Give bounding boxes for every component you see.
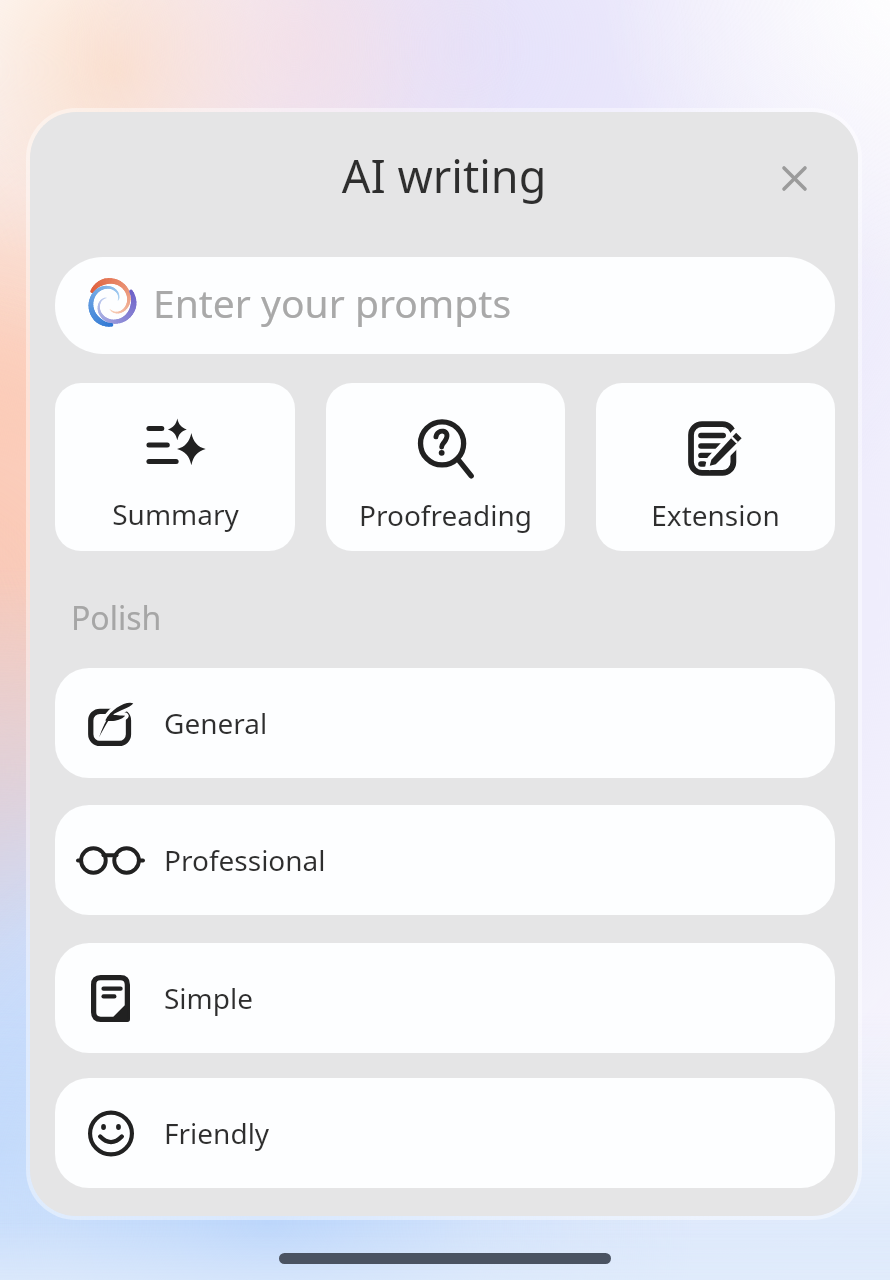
button[interactable]: Proofreading: [326, 383, 565, 551]
staticText: Extension: [651, 496, 780, 534]
button[interactable]: Friendly: [55, 1078, 835, 1188]
staticText: General: [164, 704, 268, 742]
button[interactable]: Summary: [55, 383, 295, 551]
staticText: Simple: [164, 979, 254, 1017]
button[interactable]: Extension: [596, 383, 835, 551]
staticText: Professional: [164, 841, 326, 879]
staticText: Polish: [71, 596, 162, 640]
staticText: Enter your prompts: [153, 276, 512, 329]
button[interactable]: Enter your prompts: [55, 257, 835, 354]
button[interactable]: Professional: [55, 805, 835, 915]
staticText: Friendly: [164, 1114, 270, 1152]
staticText: AI writing: [30, 145, 858, 206]
button[interactable]: General: [55, 668, 835, 778]
staticText: Summary: [112, 495, 239, 533]
button[interactable]: Simple: [55, 943, 835, 1053]
button[interactable]: Close: [766, 150, 822, 206]
staticText: Proofreading: [359, 496, 532, 534]
